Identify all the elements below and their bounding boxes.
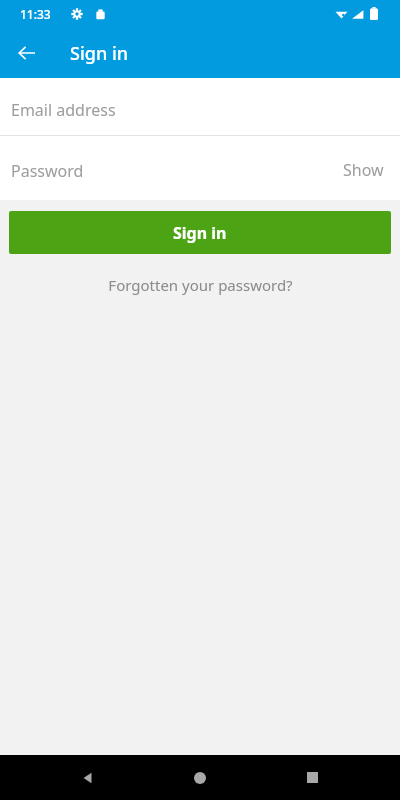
staticText: Forgotten your password? (108, 275, 293, 295)
staticText: Email address (11, 99, 116, 121)
staticText: Password (11, 160, 84, 182)
button[interactable]: Recent apps (288, 755, 336, 800)
button[interactable]: Back (64, 755, 112, 800)
staticText: Sign in (70, 41, 129, 66)
staticText: Show (343, 159, 384, 181)
staticText: 11:33 (20, 6, 51, 22)
staticText: Sign in (173, 222, 227, 244)
button[interactable]: Back (9, 35, 45, 71)
button[interactable]: Sign in (9, 211, 391, 254)
button[interactable]: Password (0, 136, 400, 200)
button[interactable]: Home (176, 755, 224, 800)
button[interactable]: Forgotten your password? (98, 271, 303, 299)
button[interactable]: Email address (0, 78, 400, 135)
button[interactable]: Show (337, 154, 390, 186)
